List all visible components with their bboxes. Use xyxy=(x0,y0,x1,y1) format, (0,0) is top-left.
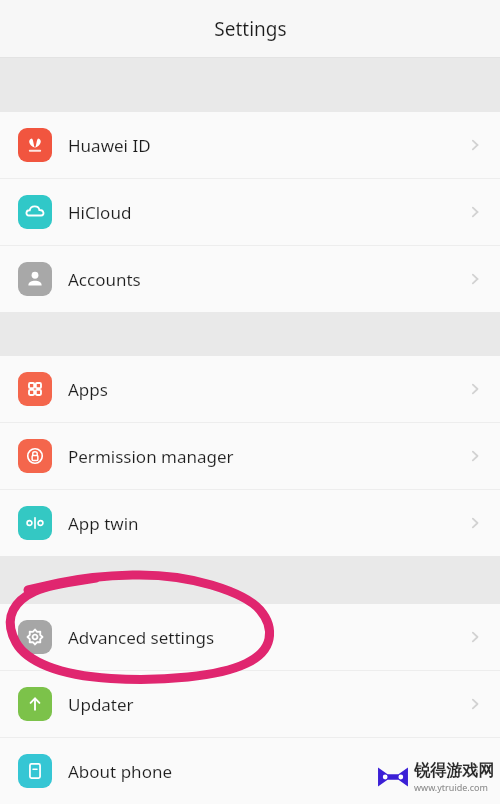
staticText: Advanced settings xyxy=(68,626,466,649)
staticText: Huawei ID xyxy=(68,134,466,157)
button[interactable]: Accounts xyxy=(0,246,500,312)
staticText: www.ytruide.com xyxy=(414,781,488,793)
staticText: Settings xyxy=(214,16,287,42)
button[interactable]: App twin xyxy=(0,490,500,556)
button[interactable]: About phone xyxy=(0,738,500,804)
staticText: Accounts xyxy=(68,268,466,291)
staticText: Permission manager xyxy=(68,445,466,468)
button[interactable]: Permission manager xyxy=(0,423,500,489)
staticText: About phone xyxy=(68,760,466,783)
staticText: Apps xyxy=(68,378,466,401)
button[interactable]: Huawei ID xyxy=(0,112,500,178)
button[interactable]: HiCloud xyxy=(0,179,500,245)
staticText: App twin xyxy=(68,512,466,535)
staticText: HiCloud xyxy=(68,201,466,224)
staticText: Updater xyxy=(68,693,466,716)
button[interactable]: Advanced settings xyxy=(0,604,500,670)
staticText: 锐得游戏网 xyxy=(414,761,494,781)
button[interactable]: Updater xyxy=(0,671,500,737)
button[interactable]: Apps xyxy=(0,356,500,422)
